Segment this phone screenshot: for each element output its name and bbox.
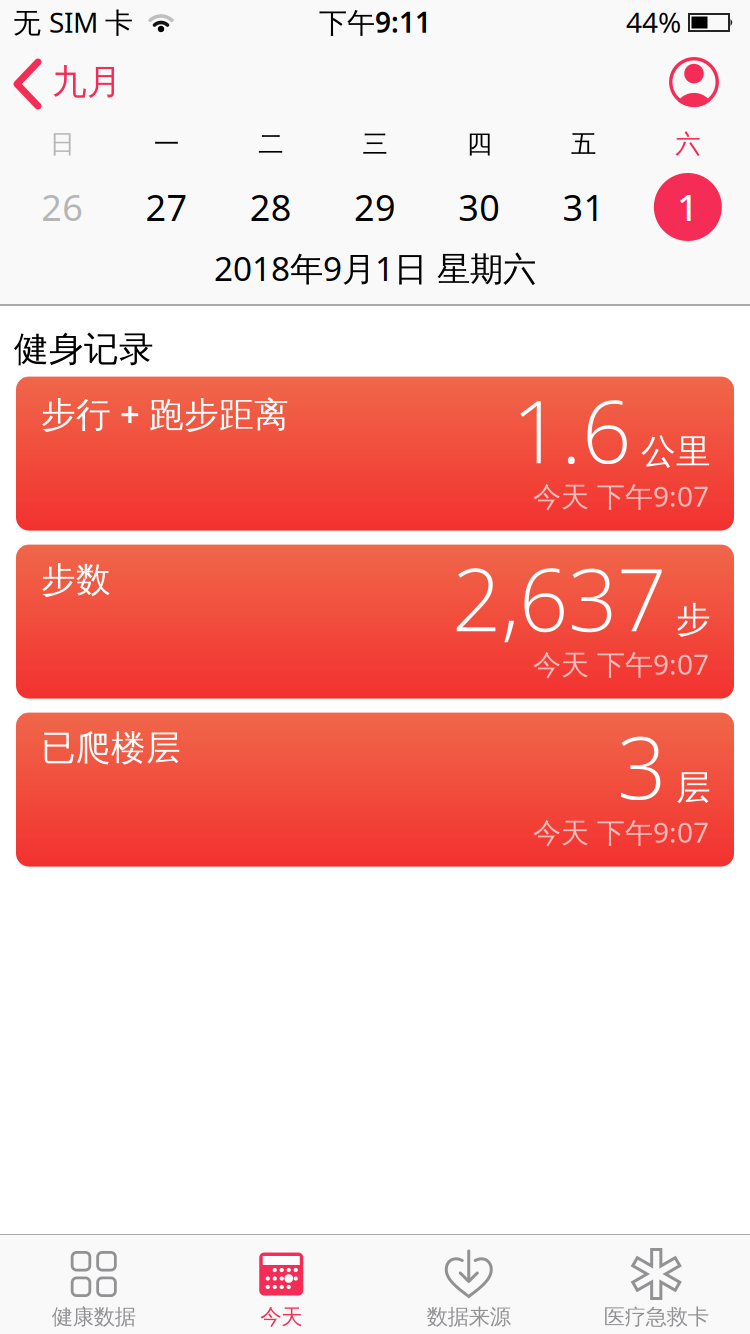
button[interactable]: 今天: [187, 1235, 375, 1334]
staticText: 步: [676, 598, 711, 641]
button[interactable]: 29: [323, 183, 427, 231]
staticText: 3: [617, 707, 666, 825]
staticText: 无 SIM 卡: [13, 3, 133, 41]
staticText: 健康数据: [52, 1304, 136, 1330]
staticText: 步数: [41, 559, 111, 601]
button[interactable]: Profile: [669, 57, 750, 107]
staticText: 30: [458, 183, 500, 231]
button[interactable]: 九月: [0, 59, 122, 105]
button[interactable]: 1: [636, 173, 740, 241]
staticText: 31: [563, 183, 605, 231]
button[interactable]: 健康数据: [0, 1235, 187, 1334]
staticText: 2018年9月1日 星期六: [214, 246, 536, 290]
staticText: 二: [258, 128, 283, 159]
staticText: 三: [362, 128, 387, 159]
button[interactable]: 31: [531, 183, 636, 231]
staticText: 一: [154, 128, 179, 159]
staticText: 四: [467, 128, 492, 159]
staticText: 下午9:11: [319, 3, 431, 41]
staticText: 五: [571, 128, 596, 159]
staticText: 已爬楼层: [41, 727, 181, 769]
button[interactable]: 已爬楼层: [16, 713, 734, 867]
staticText: 今天 下午9:07: [533, 645, 709, 683]
staticText: 26: [41, 183, 83, 231]
staticText: 健身记录: [14, 328, 154, 371]
staticText: 27: [145, 183, 187, 231]
staticText: 29: [354, 183, 396, 231]
staticText: 六: [675, 128, 700, 159]
staticText: 2,637: [452, 539, 666, 657]
staticText: 公里: [641, 430, 711, 473]
staticText: 今天 下午9:07: [533, 477, 709, 515]
button[interactable]: 27: [114, 183, 219, 231]
staticText: 日: [50, 128, 75, 159]
button[interactable]: 步行 + 跑步距离: [16, 377, 734, 531]
staticText: 层: [676, 766, 711, 809]
button[interactable]: 28: [219, 183, 323, 231]
button[interactable]: 步数: [16, 545, 734, 699]
staticText: 步行 + 跑步距离: [41, 391, 289, 437]
staticText: 1.6: [512, 371, 631, 489]
button[interactable]: 数据来源: [375, 1235, 562, 1334]
button[interactable]: 医疗急救卡: [562, 1235, 750, 1334]
button[interactable]: 26: [10, 183, 114, 231]
staticText: 44%: [626, 3, 681, 41]
staticText: 今天: [260, 1304, 302, 1330]
staticText: 医疗急救卡: [604, 1304, 709, 1330]
staticText: 28: [250, 183, 292, 231]
staticText: 九月: [52, 61, 122, 103]
staticText: 数据来源: [427, 1304, 511, 1330]
button[interactable]: 30: [427, 183, 531, 231]
staticText: 1: [677, 183, 698, 231]
staticText: 今天 下午9:07: [533, 813, 709, 851]
